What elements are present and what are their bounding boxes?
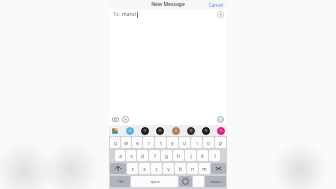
button[interactable]: k — [197, 150, 208, 161]
staticText: d — [141, 153, 144, 159]
staticText: To: — [113, 11, 120, 18]
button[interactable]: z — [127, 163, 138, 174]
button[interactable]: Add contact — [217, 11, 224, 18]
button[interactable]: o — [203, 137, 214, 148]
staticText: y — [171, 140, 174, 146]
button[interactable]: c — [151, 163, 162, 174]
staticText: a — [119, 153, 122, 159]
button[interactable]: App — [172, 127, 180, 135]
button[interactable]: p — [215, 137, 226, 148]
staticText: r — [148, 140, 150, 146]
button[interactable]: 123 — [110, 176, 130, 187]
button[interactable]: t — [155, 137, 166, 148]
button[interactable]: e — [132, 137, 142, 148]
staticText: space — [150, 179, 160, 184]
button[interactable]: n — [187, 163, 198, 174]
button[interactable]: App — [202, 127, 210, 135]
staticText: i — [196, 140, 198, 146]
staticText: p — [219, 140, 222, 146]
button[interactable]: x — [139, 163, 150, 174]
staticText: 123 — [117, 179, 124, 184]
button[interactable]: j — [185, 150, 196, 161]
button[interactable]: App — [156, 127, 164, 135]
staticText: t — [160, 140, 162, 146]
button[interactable]: space — [131, 176, 178, 187]
button[interactable]: . — [193, 176, 204, 187]
button[interactable]: r — [143, 137, 154, 148]
button[interactable]: s — [126, 150, 136, 161]
button[interactable]: Shift — [110, 163, 126, 174]
staticText: g — [165, 153, 168, 159]
button[interactable]: Camera — [112, 116, 119, 123]
staticText: z — [131, 166, 134, 172]
staticText: Cancel — [209, 2, 224, 8]
button[interactable]: d — [137, 150, 148, 161]
button[interactable]: Send — [217, 116, 224, 123]
button[interactable]: App — [111, 127, 119, 135]
button[interactable]: g — [161, 150, 172, 161]
staticText: m — [202, 166, 207, 172]
staticText: h — [177, 153, 180, 159]
button[interactable]: Backspace — [211, 163, 226, 174]
staticText: j — [190, 153, 192, 159]
staticText: v — [167, 166, 170, 172]
staticText: k — [201, 153, 204, 159]
button[interactable]: a — [115, 150, 125, 161]
button[interactable]: return — [205, 176, 226, 187]
button[interactable]: f — [149, 150, 160, 161]
button[interactable]: App — [187, 127, 195, 135]
staticText: w — [124, 140, 128, 146]
staticText: o — [207, 140, 210, 146]
staticText: l — [214, 153, 216, 159]
staticText: return — [210, 179, 221, 184]
staticText: n — [191, 166, 194, 172]
button[interactable]: App — [217, 127, 225, 135]
button[interactable]: i — [191, 137, 202, 148]
button[interactable]: m — [199, 163, 210, 174]
button[interactable]: h — [173, 150, 184, 161]
button[interactable]: q — [110, 137, 120, 148]
button[interactable]: y — [167, 137, 178, 148]
staticText: b — [179, 166, 182, 172]
staticText: q — [114, 140, 117, 146]
button[interactable]: App — [141, 127, 149, 135]
staticText: marol — [122, 11, 136, 18]
staticText: s — [130, 153, 133, 159]
button[interactable]: To: — [109, 9, 227, 20]
button[interactable]: b — [175, 163, 186, 174]
staticText: e — [136, 140, 139, 146]
button[interactable]: App Store — [122, 116, 129, 123]
staticText: c — [155, 166, 158, 172]
button[interactable]: l — [209, 150, 220, 161]
button[interactable]: w — [121, 137, 131, 148]
staticText: x — [143, 166, 146, 172]
staticText: New Message — [151, 1, 185, 8]
button[interactable]: Emoji — [179, 176, 192, 187]
button[interactable]: App — [126, 127, 134, 135]
staticText: u — [183, 140, 186, 146]
button[interactable]: v — [163, 163, 174, 174]
button[interactable]: Cancel — [209, 2, 224, 8]
button[interactable]: u — [179, 137, 190, 148]
staticText: . — [198, 179, 200, 184]
staticText: f — [154, 153, 156, 159]
